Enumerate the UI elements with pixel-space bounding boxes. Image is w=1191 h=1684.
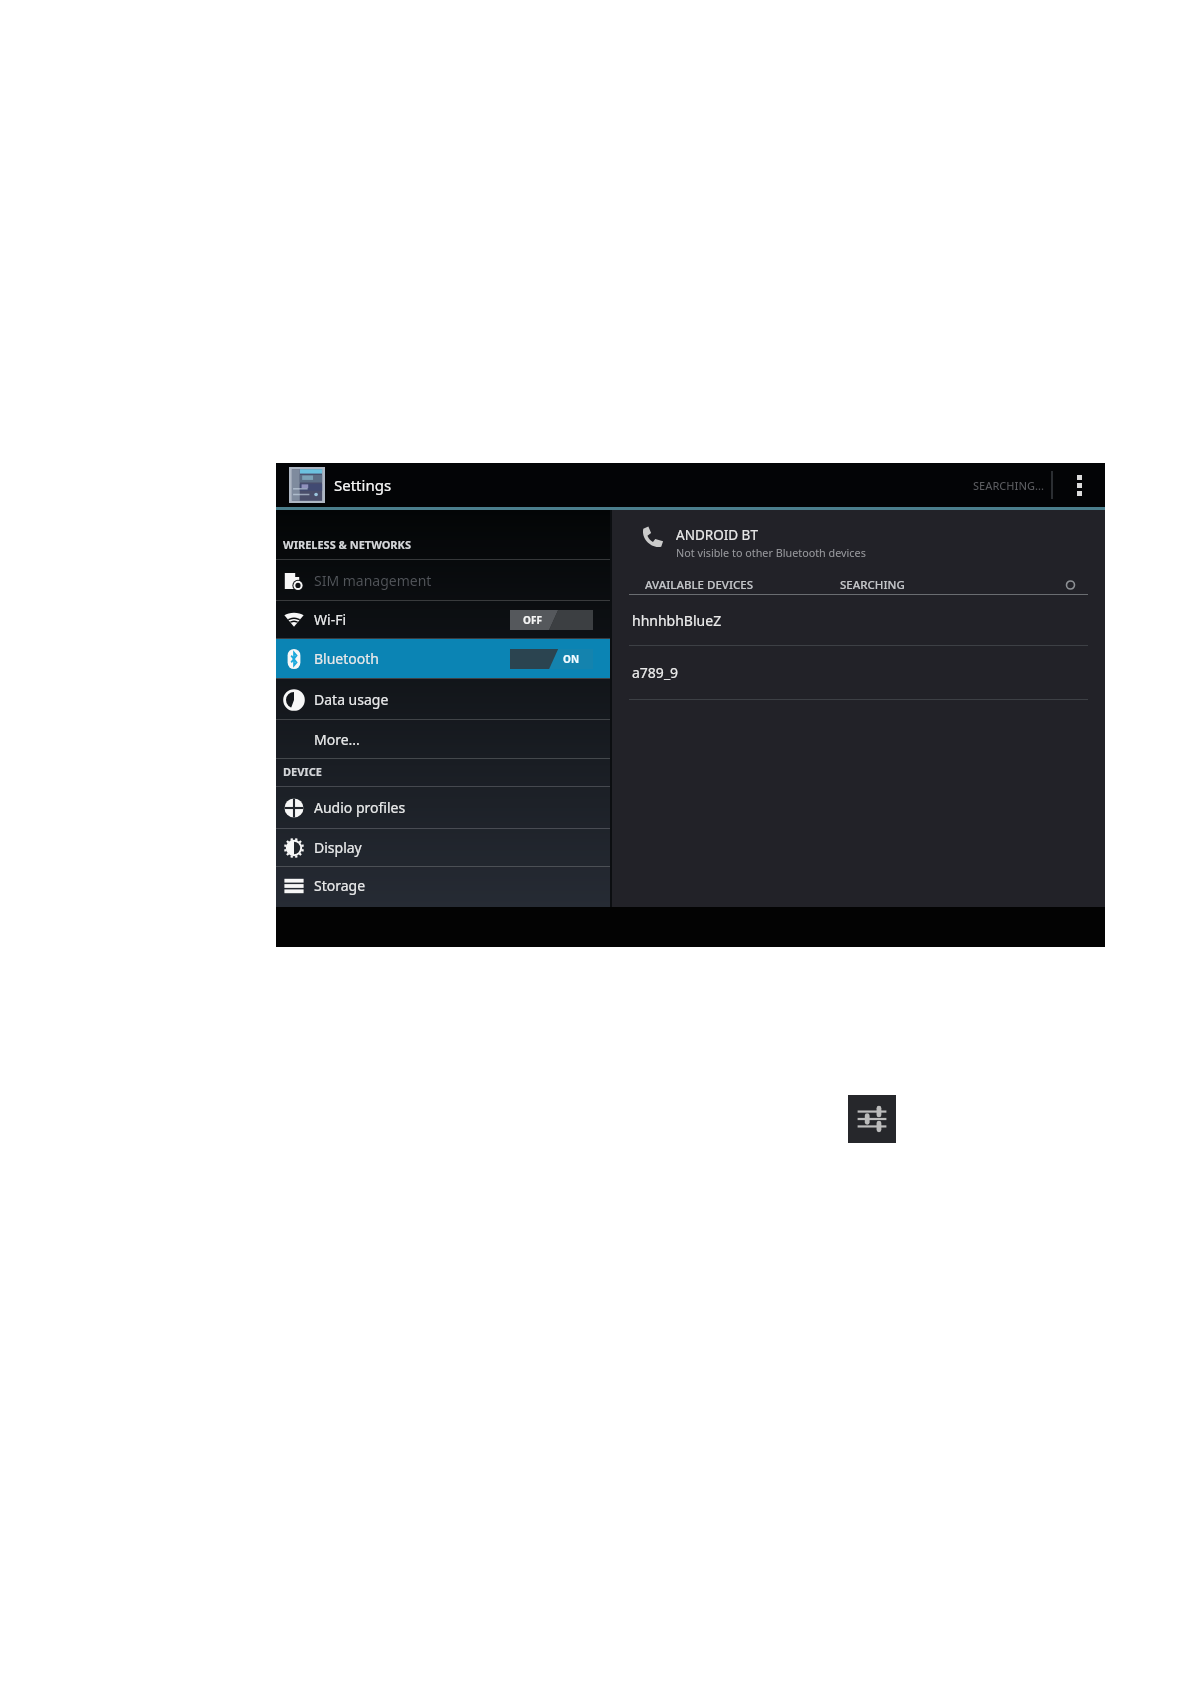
button[interactable]: hhnhbhBlueZ <box>612 595 1105 645</box>
button[interactable]: Storage <box>276 867 610 904</box>
button[interactable]: Turn on <box>510 610 593 630</box>
button[interactable]: Data usage <box>276 679 610 719</box>
staticText: Data usage <box>314 690 389 709</box>
staticText: a789_9 <box>632 663 679 682</box>
button[interactable]: Bluetooth <box>276 639 610 678</box>
button[interactable]: SIM management <box>276 560 610 600</box>
staticText: SEARCHING <box>840 577 905 593</box>
staticText: SEARCHING... <box>973 478 1044 493</box>
staticText: Audio profiles <box>314 798 406 817</box>
button[interactable]: Display <box>276 829 610 866</box>
staticText: More... <box>314 730 360 749</box>
button[interactable]: More options <box>1053 463 1105 507</box>
button[interactable]: Sound settings <box>848 1095 896 1143</box>
staticText: Wi-Fi <box>314 610 347 629</box>
staticText: hhnhbhBlueZ <box>632 611 722 630</box>
button[interactable]: a789_9 <box>612 646 1105 699</box>
button[interactable]: Turn off <box>510 649 593 669</box>
button[interactable]: Wi-Fi <box>276 601 610 638</box>
staticText: Settings <box>334 475 392 495</box>
staticText: ON <box>563 652 580 666</box>
staticText: DEVICE <box>283 764 322 779</box>
staticText: SIM management <box>314 571 432 590</box>
button[interactable]: Settings home <box>289 467 325 503</box>
staticText: AVAILABLE DEVICES <box>645 577 754 593</box>
staticText: Bluetooth <box>314 649 379 668</box>
staticText: Display <box>314 838 362 857</box>
staticText: ANDROID BT <box>676 526 758 544</box>
staticText: Not visible to other Bluetooth devices <box>676 545 866 560</box>
staticText: WIRELESS & NETWORKS <box>283 537 411 552</box>
button[interactable]: Audio profiles <box>276 787 610 828</box>
staticText: OFF <box>523 613 542 627</box>
button[interactable]: More... <box>276 720 610 758</box>
staticText: Storage <box>314 876 366 895</box>
